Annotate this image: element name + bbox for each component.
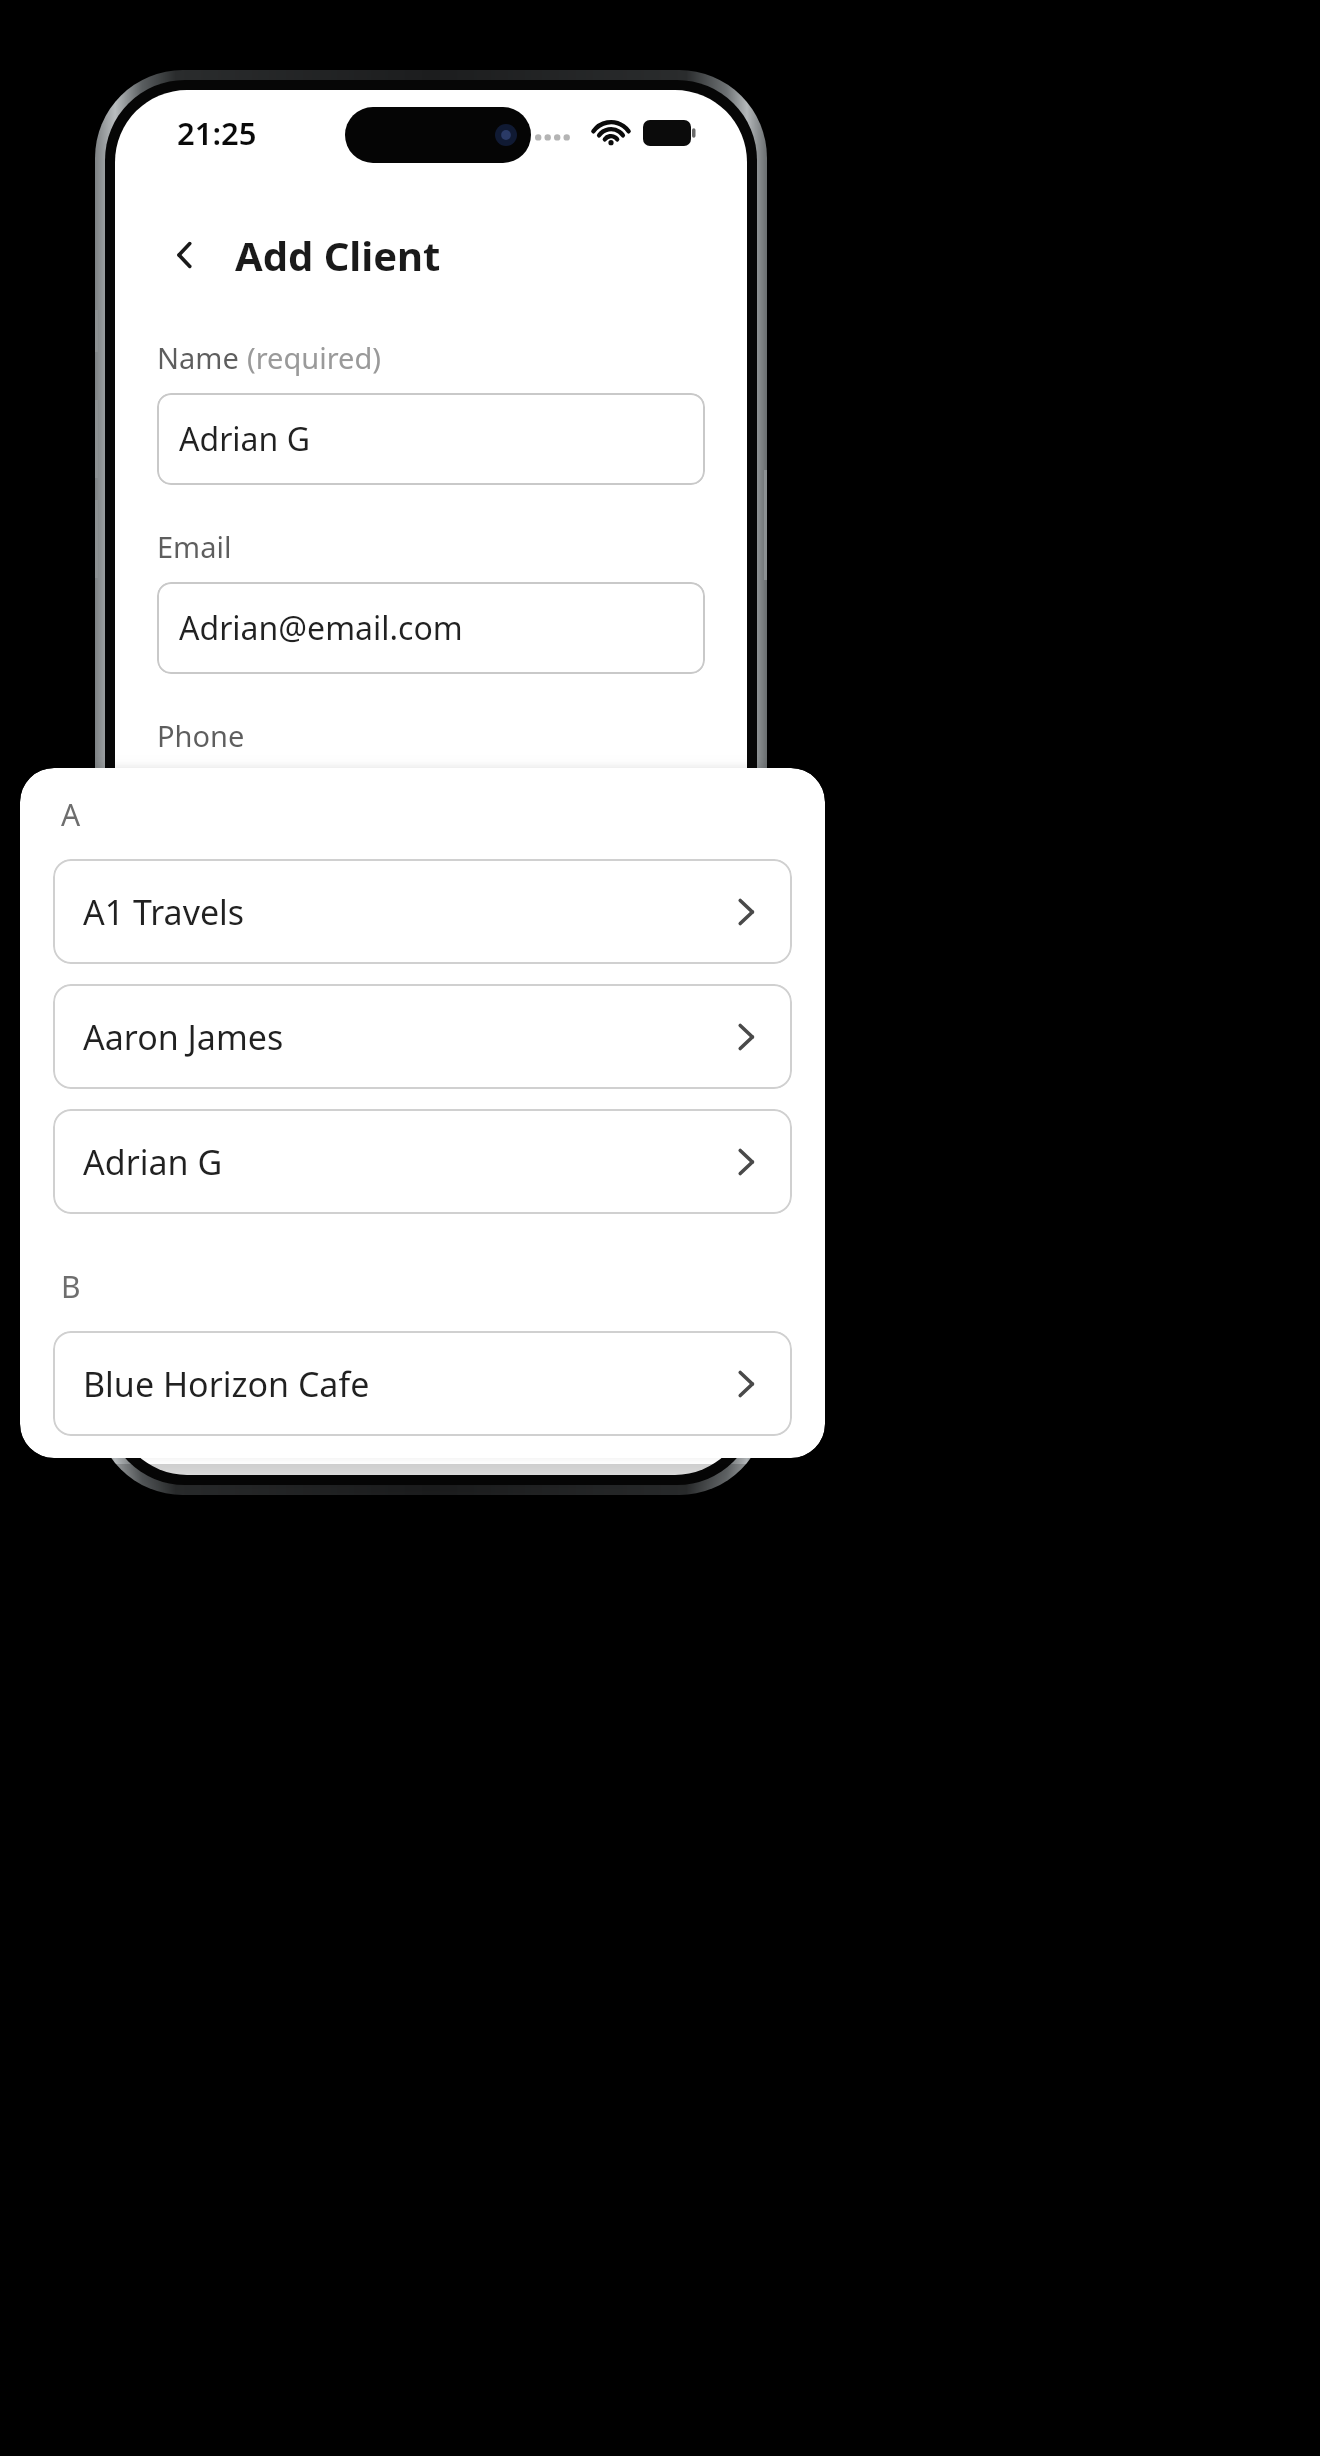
staticText: Adrian@email.com	[179, 606, 463, 650]
staticText: A	[61, 794, 81, 835]
staticText: Blue Horizon Cafe	[83, 1361, 370, 1407]
staticText: B	[61, 1266, 81, 1307]
button[interactable]: Blue Horizon Cafe	[53, 1331, 792, 1436]
staticText: 21:25	[177, 112, 257, 154]
button[interactable]: Adrian G	[53, 1109, 792, 1214]
staticText: Adrian G	[83, 1139, 223, 1185]
button[interactable]: Back	[157, 227, 213, 283]
staticText: Aaron James	[83, 1014, 284, 1060]
staticText: A1 Travels	[83, 889, 245, 935]
button[interactable]: Adrian@email.com	[157, 582, 705, 674]
staticText: Email	[157, 527, 232, 566]
button[interactable]: +123456789	[157, 771, 705, 863]
button[interactable]: Aaron James	[53, 984, 792, 1089]
button[interactable]: Adrian G	[157, 393, 705, 485]
staticText: Adrian G	[179, 417, 310, 461]
staticText: (required)	[247, 338, 381, 377]
staticText: Phone	[157, 716, 245, 755]
button[interactable]: A1 Travels	[53, 859, 792, 964]
staticText: Add Client	[235, 228, 441, 282]
staticText: Name	[157, 338, 247, 377]
